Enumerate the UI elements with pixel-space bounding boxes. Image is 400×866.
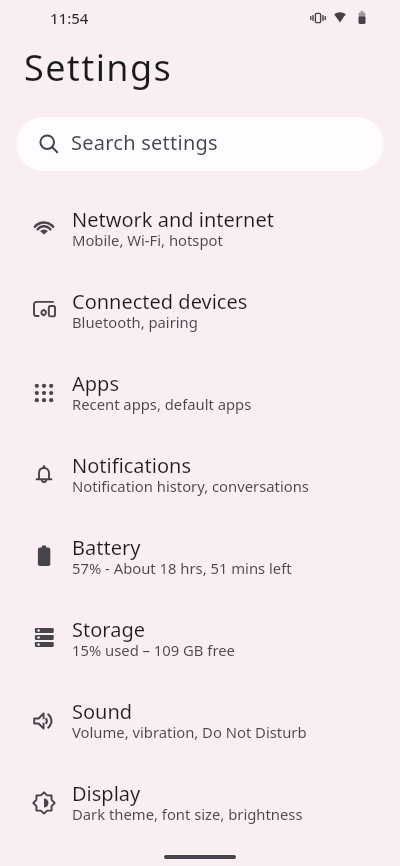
staticText: 15% used – 109 GB free <box>72 640 235 660</box>
button[interactable]: Apps <box>0 352 400 434</box>
staticText: Battery <box>72 534 141 561</box>
staticText: Mobile, Wi-Fi, hotspot <box>72 230 223 250</box>
staticText: 11:54 <box>50 8 89 28</box>
staticText: Sound <box>72 698 133 725</box>
staticText: Notifications <box>72 452 191 479</box>
staticText: Search settings <box>71 129 218 156</box>
button[interactable]: Notifications <box>0 434 400 516</box>
staticText: Settings <box>24 43 173 92</box>
staticText: Volume, vibration, Do Not Disturb <box>72 722 307 742</box>
button[interactable]: Battery <box>0 516 400 598</box>
staticText: Storage <box>72 616 145 643</box>
staticText: Recent apps, default apps <box>72 394 252 414</box>
button[interactable]: Search settings <box>16 117 384 171</box>
staticText: Network and internet <box>72 206 274 233</box>
button[interactable]: Display <box>0 762 400 844</box>
staticText: Display <box>72 780 141 807</box>
staticText: Dark theme, font size, brightness <box>72 804 303 824</box>
button[interactable]: Connected devices <box>0 270 400 352</box>
staticText: Bluetooth, pairing <box>72 312 198 332</box>
button[interactable]: Network and internet <box>0 188 400 270</box>
staticText: Connected devices <box>72 288 248 315</box>
staticText: Apps <box>72 370 119 397</box>
button[interactable]: Sound <box>0 680 400 762</box>
staticText: 57% - About 18 hrs, 51 mins left <box>72 558 292 578</box>
button[interactable]: Storage <box>0 598 400 680</box>
staticText: Notification history, conversations <box>72 476 309 496</box>
